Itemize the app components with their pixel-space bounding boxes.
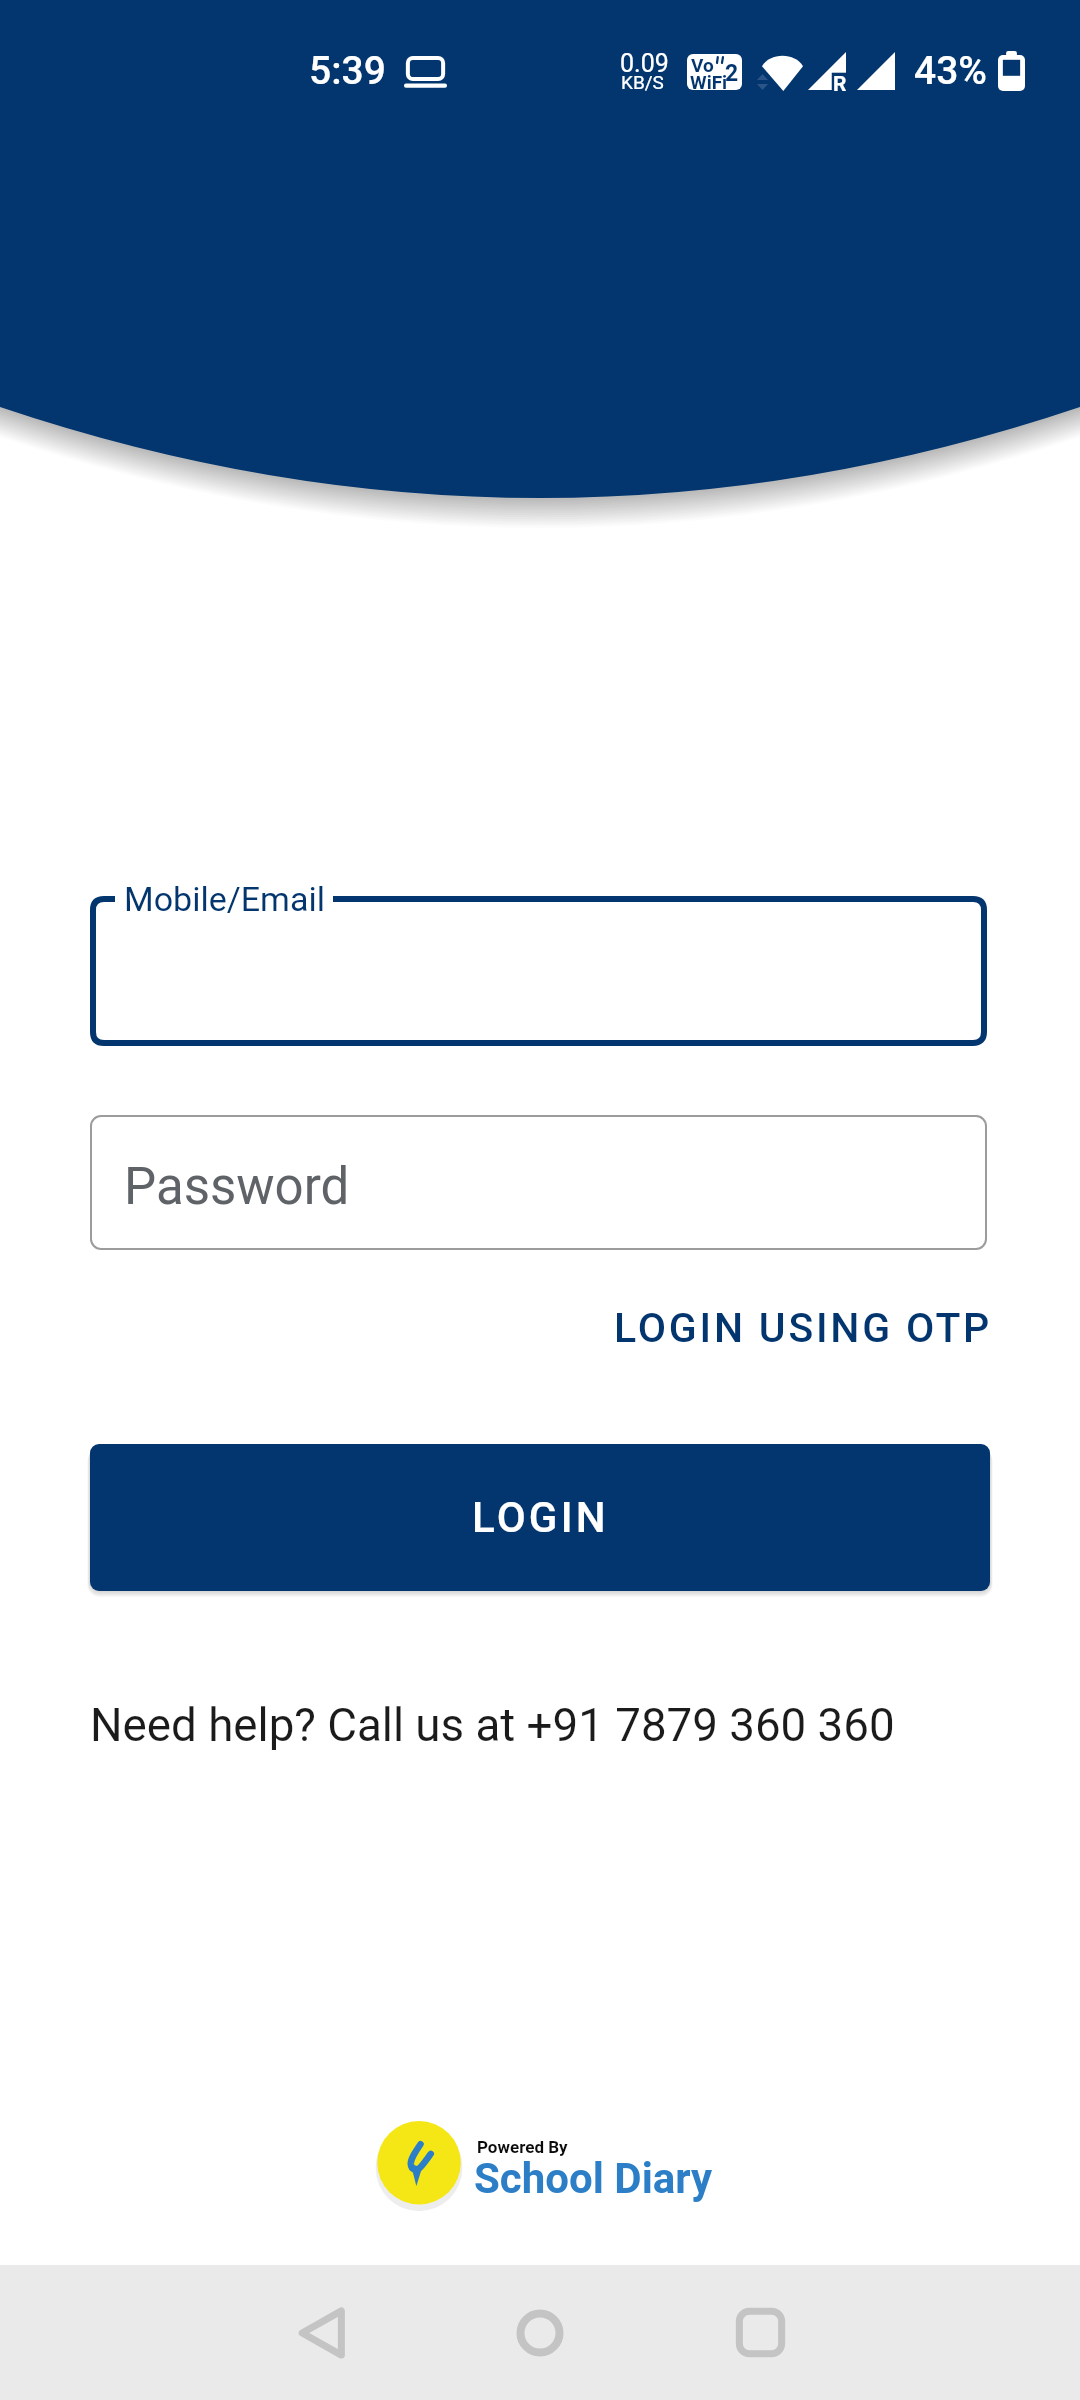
button[interactable]: Home <box>450 2265 630 2400</box>
staticText: Need help? Call us at +91 7879 360 360 <box>90 1699 895 1753</box>
staticText: Mobile/Email <box>124 879 325 919</box>
staticText: Powered By <box>477 2137 568 2157</box>
staticText: R <box>833 72 847 97</box>
staticText: School Diary <box>474 2154 713 2203</box>
staticText: 0.09 <box>620 49 669 78</box>
button[interactable]: LOGIN USING OTP <box>612 1288 995 1368</box>
button[interactable]: LOGIN <box>90 1444 990 1591</box>
staticText: LOGIN USING OTP <box>614 1304 993 1352</box>
staticText: 2 <box>725 60 739 87</box>
staticText: 43% <box>914 48 987 94</box>
button[interactable]: Back <box>232 2265 412 2400</box>
staticText: KB/S <box>621 71 664 93</box>
button[interactable]: Need help? Call us at +91 7879 360 360 <box>90 1699 895 1753</box>
staticText: LOGIN <box>472 1493 609 1542</box>
staticText: 5:39 <box>309 48 386 94</box>
button[interactable]: Password <box>90 1115 987 1250</box>
button[interactable]: Recent apps <box>670 2265 850 2400</box>
button[interactable]: Mobile/Email <box>90 896 987 1046</box>
staticText: Password <box>124 1157 350 1217</box>
staticText: WiFi <box>690 71 728 90</box>
staticText: Vo <box>691 54 714 76</box>
